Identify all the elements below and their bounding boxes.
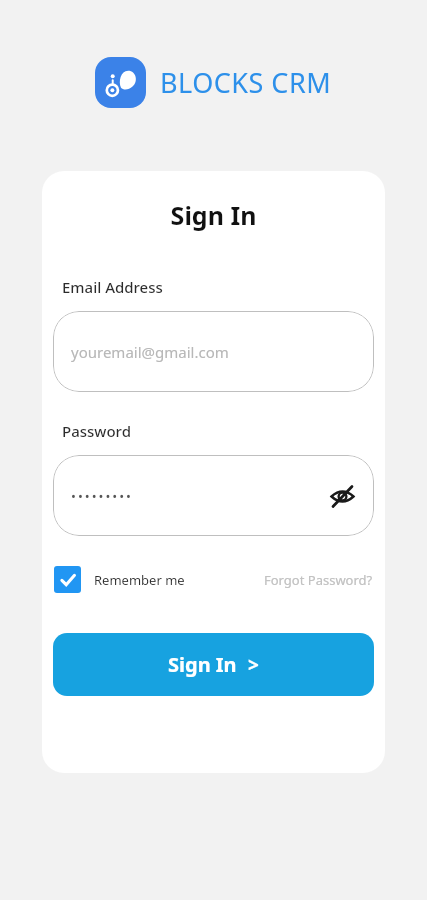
staticText: Password [62,421,131,441]
staticText: ••••••••• [71,487,133,505]
button[interactable]: Remember me checkbox [54,566,81,593]
staticText: BLOCKS CRM [160,64,332,101]
other: Blocks CRM logo [95,57,146,108]
staticText: > [248,652,259,678]
button[interactable]: Sign In [53,633,374,696]
staticText: Forgot Password? [264,571,373,589]
button[interactable]: Forgot Password? [264,571,373,589]
button[interactable]: youremail@gmail.com [53,311,374,392]
button[interactable]: Remember me checkbox [54,566,185,593]
staticText: youremail@gmail.com [71,342,229,362]
staticText: Remember me [94,571,185,589]
button[interactable]: Show password [324,478,360,514]
staticText: Sign In [168,651,237,678]
staticText: Sign In [53,198,374,232]
staticText: Email Address [62,277,163,297]
button[interactable]: ••••••••• [53,455,374,536]
